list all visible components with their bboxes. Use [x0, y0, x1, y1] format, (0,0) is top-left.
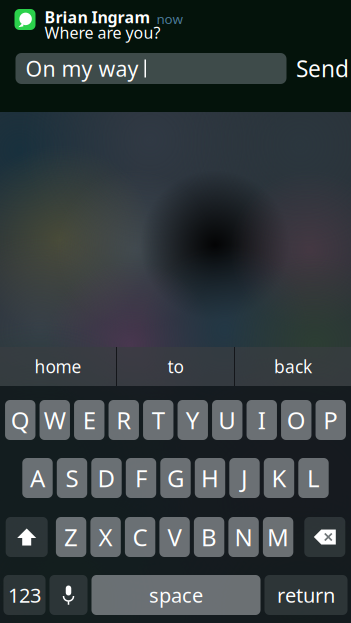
staticText: M	[267, 521, 289, 553]
staticText: B	[201, 521, 217, 553]
staticText: On my way	[25, 54, 138, 83]
staticText: E	[83, 404, 96, 436]
button[interactable]: Z	[56, 517, 86, 557]
staticText: D	[97, 462, 115, 494]
button[interactable]: home	[0, 347, 116, 386]
staticText: O	[287, 404, 306, 436]
button[interactable]: X	[90, 517, 121, 557]
button[interactable]: T	[143, 400, 173, 440]
staticText: space	[149, 582, 203, 608]
staticText: Brian Ingram	[44, 6, 150, 28]
button[interactable]: W	[40, 400, 70, 440]
button[interactable]: C	[125, 517, 155, 557]
button[interactable]: Delete	[304, 517, 345, 557]
staticText: W	[44, 404, 66, 436]
staticText: Send	[296, 53, 349, 83]
staticText: V	[168, 521, 182, 553]
button[interactable]: R	[109, 400, 139, 440]
button[interactable]: S	[57, 458, 87, 498]
staticText: to	[167, 355, 183, 378]
staticText: Y	[186, 404, 200, 436]
staticText: A	[30, 462, 45, 494]
button[interactable]: 123	[3, 575, 45, 615]
staticText: J	[241, 462, 248, 494]
staticText: T	[152, 404, 165, 436]
button[interactable]: E	[74, 400, 104, 440]
staticText: home	[34, 355, 81, 378]
staticText: G	[167, 462, 184, 494]
staticText: P	[323, 404, 338, 436]
button[interactable]: N	[228, 517, 259, 557]
button[interactable]: back	[235, 347, 351, 386]
button[interactable]: K	[264, 458, 294, 498]
button[interactable]: G	[160, 458, 191, 498]
button[interactable]: to	[117, 347, 234, 386]
staticText: N	[235, 521, 253, 553]
staticText: back	[274, 355, 312, 378]
staticText: now	[156, 10, 182, 28]
button[interactable]: I	[247, 400, 277, 440]
button[interactable]: return	[264, 575, 347, 615]
staticText: H	[201, 462, 219, 494]
button[interactable]: space	[91, 575, 260, 615]
button[interactable]: J	[229, 458, 260, 498]
staticText: L	[307, 462, 320, 494]
button[interactable]: M	[263, 517, 293, 557]
button[interactable]: B	[194, 517, 224, 557]
button[interactable]: H	[195, 458, 225, 498]
staticText: K	[271, 462, 286, 494]
staticText: S	[65, 462, 78, 494]
staticText: return	[277, 582, 335, 608]
staticText: Where are you?	[44, 22, 160, 43]
staticText: I	[258, 404, 266, 436]
button[interactable]: Y	[178, 400, 208, 440]
staticText: F	[135, 462, 147, 494]
button[interactable]: Shift	[6, 517, 48, 557]
button[interactable]: Dictation	[49, 575, 87, 615]
button[interactable]: P	[316, 400, 346, 440]
staticText: Q	[11, 404, 30, 436]
button[interactable]: F	[126, 458, 156, 498]
button[interactable]: Send	[286, 53, 351, 84]
staticText: Z	[64, 521, 78, 553]
staticText: X	[99, 521, 113, 553]
staticText: 123	[8, 582, 41, 608]
button[interactable]: V	[159, 517, 190, 557]
button[interactable]: U	[212, 400, 242, 440]
staticText: R	[116, 404, 131, 436]
button[interactable]: Q	[5, 400, 35, 440]
staticText: U	[218, 404, 236, 436]
staticText: C	[133, 521, 148, 553]
button[interactable]: O	[281, 400, 311, 440]
button[interactable]: D	[91, 458, 122, 498]
button[interactable]: A	[22, 458, 53, 498]
button[interactable]: L	[298, 458, 329, 498]
